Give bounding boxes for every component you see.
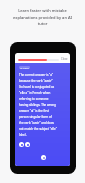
button[interactable]: Close — [60, 55, 69, 63]
staticText: The correct answer is "a" because the ve… — [19, 73, 57, 136]
staticText: AI tutor — [20, 66, 29, 69]
button[interactable]: AI tutor — [19, 66, 30, 69]
button[interactable]: Bad response — [25, 142, 30, 147]
button[interactable]: Continue — [41, 155, 46, 160]
staticText: Close — [61, 57, 68, 61]
staticText: Learn faster with mistake explanations p… — [8, 8, 77, 26]
button[interactable]: Good response — [19, 142, 24, 147]
